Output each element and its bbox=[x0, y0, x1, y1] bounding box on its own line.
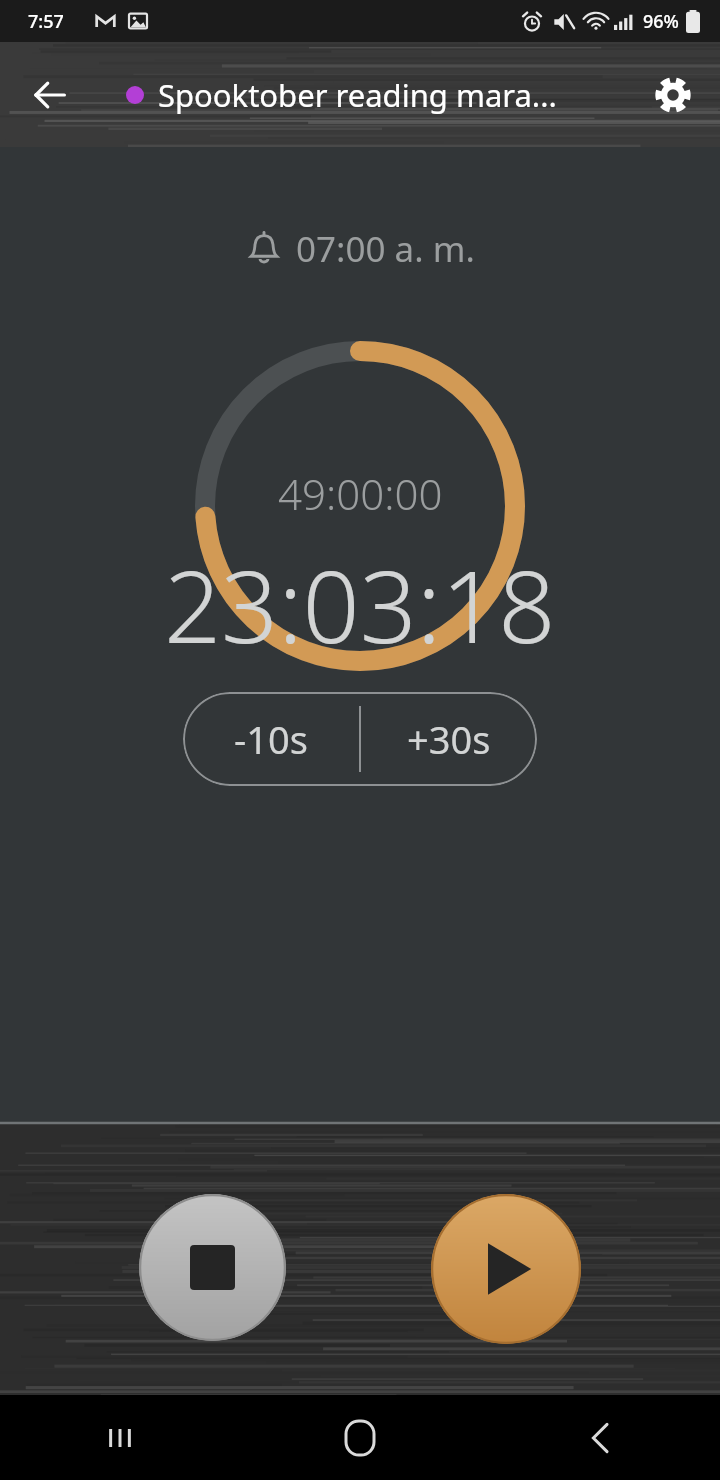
button[interactable]: Back bbox=[480, 1395, 720, 1480]
button[interactable]: 07:00 a. m. bbox=[246, 225, 475, 273]
button[interactable]: Settings bbox=[640, 62, 706, 128]
staticText: 23:03:18 bbox=[164, 536, 556, 672]
staticText: Spooktober reading mara... bbox=[158, 74, 557, 116]
staticText: 7:57 bbox=[28, 9, 64, 34]
button[interactable]: +30s bbox=[361, 692, 537, 786]
button[interactable]: Stop bbox=[139, 1194, 286, 1341]
staticText: 07:00 a. m. bbox=[296, 225, 475, 273]
button[interactable]: Recent apps bbox=[0, 1395, 240, 1480]
staticText: 49:00:00 bbox=[278, 465, 443, 522]
button[interactable]: Spooktober reading mara... bbox=[126, 42, 557, 147]
staticText: +30s bbox=[407, 713, 491, 765]
staticText: 96% bbox=[643, 9, 679, 34]
staticText: -10s bbox=[234, 713, 308, 765]
button[interactable]: Back bbox=[16, 61, 84, 129]
button[interactable]: Start bbox=[431, 1194, 581, 1344]
button[interactable]: Home bbox=[240, 1395, 480, 1480]
button[interactable]: -10s bbox=[183, 692, 359, 786]
